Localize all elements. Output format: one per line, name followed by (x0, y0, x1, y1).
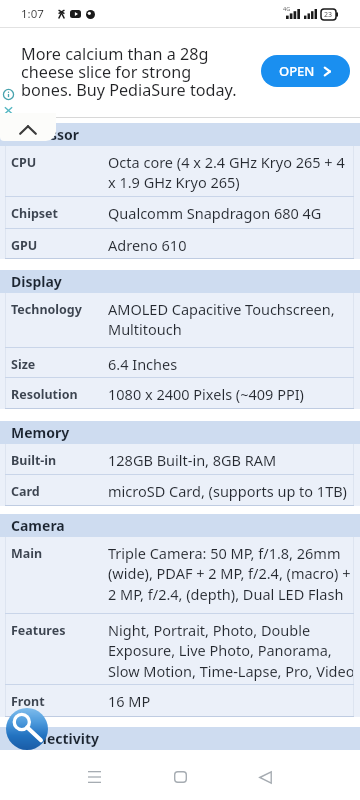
button[interactable]: Back (243, 755, 287, 799)
staticText: Memory (11, 423, 70, 442)
staticText: Qualcomm Snapdragon 680 4G (108, 203, 322, 223)
button[interactable]: Ad info (3, 89, 14, 100)
staticText: Resolution (11, 386, 78, 403)
staticText: AMOLED Capacitive Touchscreen, Multitouc… (108, 299, 335, 340)
staticText: Display (11, 272, 62, 291)
button[interactable]: Display (0, 270, 360, 293)
staticText: Front (11, 693, 45, 710)
staticText: Adreno 610 (108, 235, 187, 255)
staticText: Night, Portrait, Photo, Double Exposure,… (108, 620, 355, 682)
button[interactable]: Close ad (3, 105, 14, 116)
staticText: 128GB Built-in, 8GB RAM (108, 450, 277, 470)
staticText: Built-in (11, 452, 57, 469)
button[interactable]: Connectivity (0, 727, 360, 750)
staticText: microSD Card, (supports up to 1TB) (108, 481, 347, 501)
staticText: Technology (11, 301, 82, 318)
staticText: Features (11, 622, 66, 639)
staticText: Camera (11, 516, 65, 535)
staticText: CPU (11, 154, 37, 171)
staticText: Octa core (4 x 2.4 GHz Kryo 265 + 4 x 1.… (108, 152, 345, 193)
staticText: Card (11, 483, 40, 500)
staticText: GPU (11, 237, 38, 254)
staticText: Chipset (11, 205, 58, 222)
staticText: OPEN (279, 62, 315, 80)
button[interactable]: Recents (72, 755, 116, 799)
staticText: Processor (11, 125, 80, 144)
staticText: More calcium than a 28g cheese slice for… (21, 43, 237, 101)
button[interactable]: Scroll to top (0, 113, 56, 141)
staticText: 6.4 Inches (108, 354, 178, 374)
button[interactable]: Home (158, 755, 202, 799)
button[interactable]: Processor (0, 123, 360, 146)
staticText: Triple Camera: 50 MP, f/1.8, 26mm (wide)… (108, 543, 351, 605)
staticText: 23 (324, 10, 333, 20)
staticText: Size (11, 356, 36, 373)
staticText: Connectivity (11, 729, 100, 748)
button[interactable]: Search (6, 708, 48, 750)
staticText: 1:07 (21, 6, 44, 22)
button[interactable]: Memory (0, 421, 360, 444)
staticText: 4G (283, 5, 291, 12)
staticText: 1080 x 2400 Pixels (~409 PPI) (108, 384, 304, 404)
staticText: 16 MP (108, 691, 151, 711)
staticText: Main (11, 545, 43, 562)
button[interactable]: Camera (0, 514, 360, 537)
button[interactable]: OPEN (261, 55, 350, 87)
